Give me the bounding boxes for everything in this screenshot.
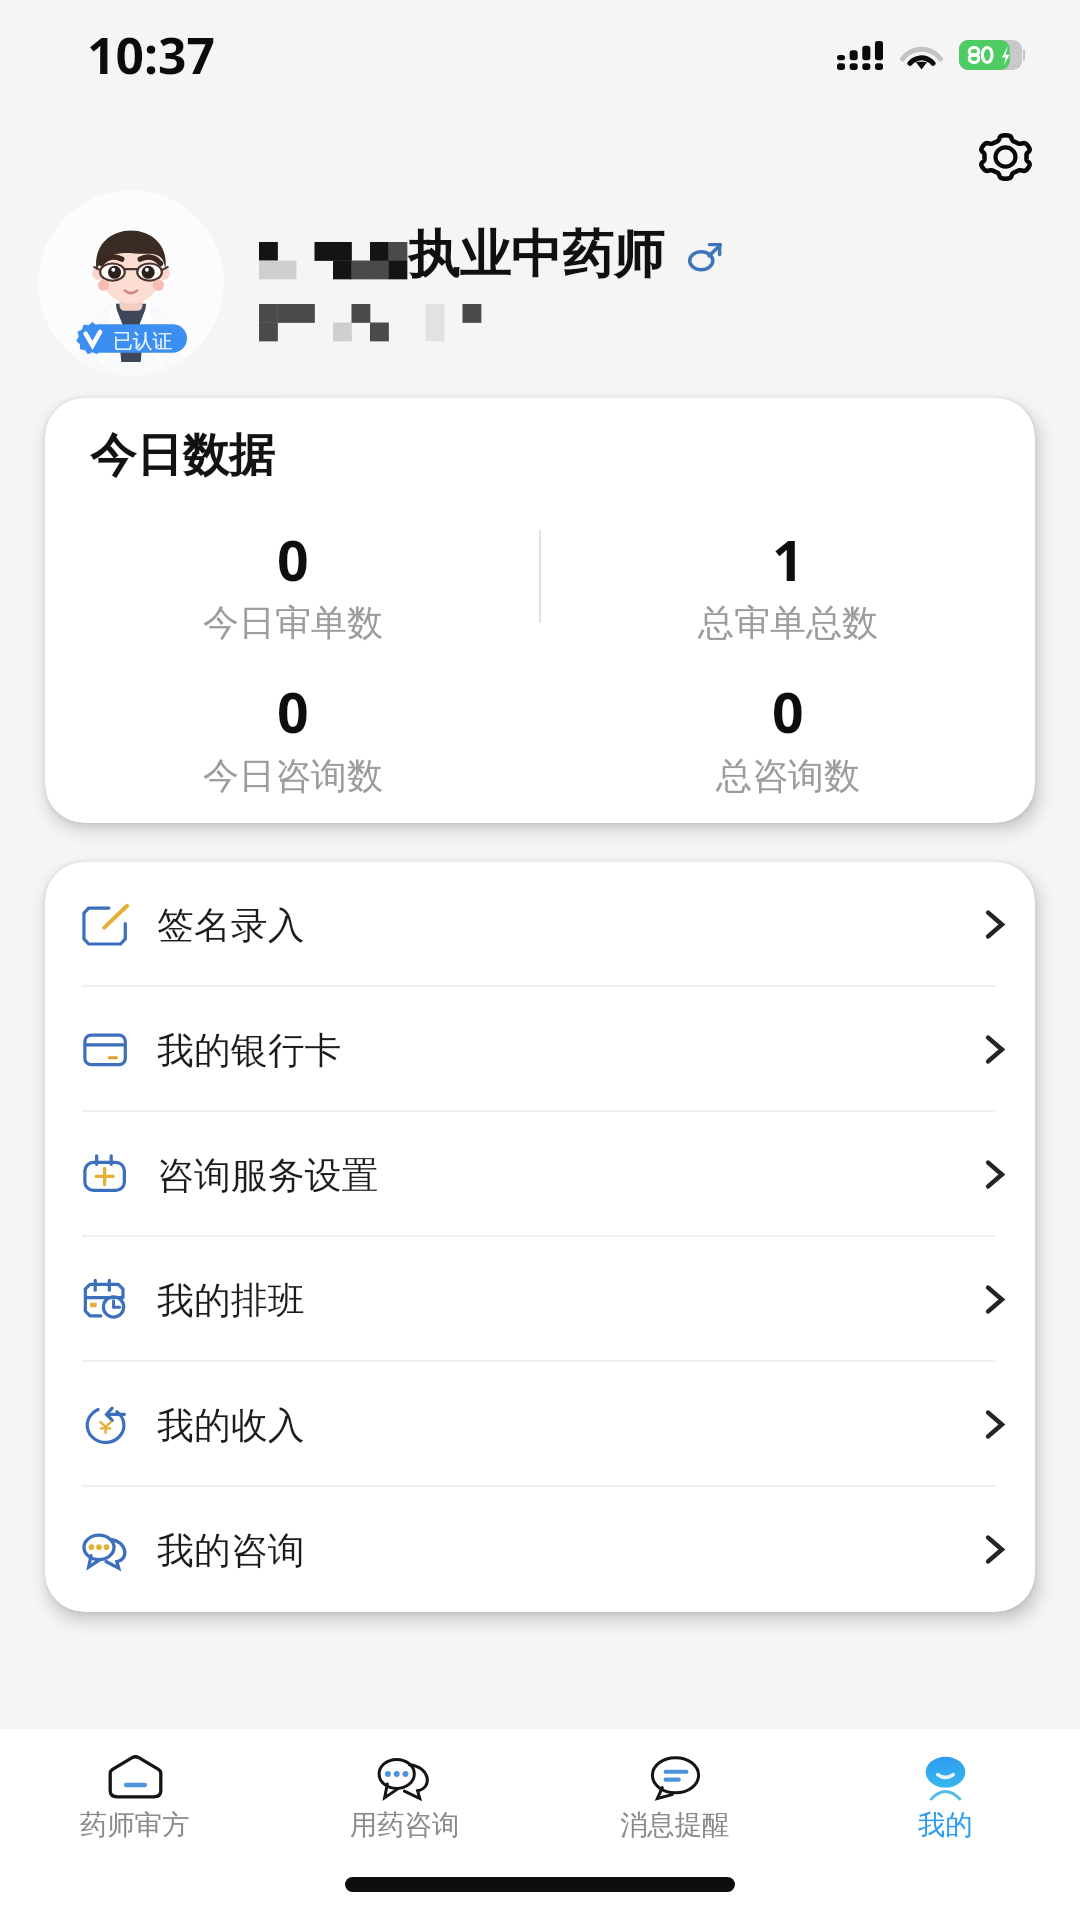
button[interactable]: 用药咨询 (270, 1729, 540, 1920)
button[interactable]: 我的 (810, 1729, 1080, 1920)
staticText: 0 (277, 522, 309, 598)
button[interactable]: 我的排班 (45, 1237, 1035, 1362)
staticText: 我的银行卡 (157, 1027, 342, 1073)
button[interactable]: 消息提醒 (540, 1729, 810, 1920)
staticText: 咨询服务设置 (157, 1152, 379, 1198)
staticText: 已认证 (113, 329, 173, 354)
button[interactable]: 签名录入 (45, 862, 1035, 987)
staticText: 我的收入 (157, 1402, 305, 1448)
staticText: 1 (772, 522, 804, 598)
staticText: 总审单总数 (698, 600, 878, 645)
staticText: 今日数据 (90, 427, 275, 485)
staticText: 今日审单数 (203, 600, 383, 645)
staticText: 药师审方 (80, 1808, 190, 1842)
staticText: 今日咨询数 (203, 753, 383, 798)
button[interactable]: 我的收入 (45, 1362, 1035, 1487)
button[interactable]: 我的咨询 (45, 1487, 1035, 1612)
staticText: 执业中药师 (408, 223, 665, 288)
button[interactable]: Settings (953, 104, 1058, 209)
staticText: 0 (277, 674, 309, 750)
staticText: 总咨询数 (716, 753, 860, 798)
staticText: 用药咨询 (350, 1808, 460, 1842)
staticText: 我的排班 (157, 1277, 305, 1323)
button[interactable]: 咨询服务设置 (45, 1112, 1035, 1237)
button[interactable]: 我的银行卡 (45, 987, 1035, 1112)
staticText: 0 (772, 674, 804, 750)
staticText: 我的咨询 (157, 1527, 305, 1573)
staticText: 我的 (918, 1808, 973, 1842)
button[interactable]: 药师审方 (0, 1729, 270, 1920)
staticText: 10:37 (87, 21, 215, 89)
staticText: 消息提醒 (620, 1808, 730, 1842)
staticText: 签名录入 (157, 902, 305, 948)
